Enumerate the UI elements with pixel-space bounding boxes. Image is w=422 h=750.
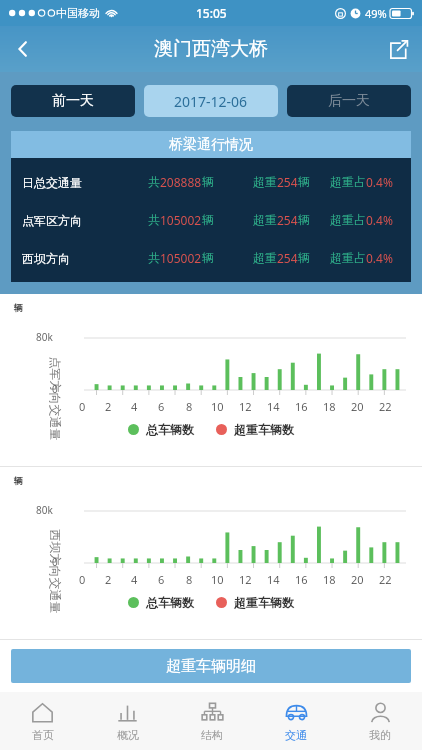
staticText: 16 [295,572,308,587]
staticText: 首页 [32,728,54,742]
staticText: 14 [267,399,280,414]
staticText: 辆 [202,174,214,189]
staticText: 0 [52,382,58,396]
staticText: 辆 [202,250,214,265]
staticText: 22 [379,399,392,414]
staticText: 20 [351,572,364,587]
staticText: 辆 [298,174,310,189]
button[interactable]: 结构 [170,692,254,750]
staticText: 80k [36,503,53,517]
staticText: 超重车辆明细 [166,657,256,676]
staticText: 超重占 [330,174,366,189]
staticText: 超重 [253,174,277,189]
staticText: 18 [323,572,336,587]
staticText: 4 [131,399,138,414]
staticText: 10 [211,572,224,587]
staticText: 80k [36,330,53,344]
staticText: 总车辆数 [146,595,194,610]
staticText: 254 [277,212,298,228]
staticText: 超重占 [330,250,366,265]
staticText: 8 [186,572,193,587]
staticText: 超重车辆数 [234,595,294,610]
staticText: 0 [52,555,58,569]
button[interactable]: Back [0,26,46,72]
staticText: 0.4% [366,212,393,228]
button[interactable]: 交通 [254,692,338,750]
staticText: 0.4% [366,250,393,266]
staticText: 105002 [160,212,202,228]
staticText: 中国移动 [56,6,100,20]
staticText: 交通 [285,728,307,742]
staticText: 0 [79,572,86,587]
button[interactable]: 2017-12-06 [144,85,278,117]
staticText: 8 [186,399,193,414]
button[interactable]: 后一天 [287,85,411,117]
staticText: 6 [158,572,165,587]
staticText: 概况 [117,728,139,742]
staticText: 点军区方向 [22,213,82,228]
staticText: 西坝方向交通量 [47,529,62,613]
button[interactable]: 我的 [338,692,422,750]
button[interactable]: Share [374,26,422,72]
staticText: 2 [105,572,112,587]
button[interactable]: 首页 [0,692,85,750]
staticText: 254 [277,250,298,266]
staticText: 16 [295,399,308,414]
staticText: 254 [277,174,298,190]
staticText: 2017-12-06 [174,92,248,111]
staticText: 西坝方向 [22,251,70,266]
staticText: 14 [267,572,280,587]
staticText: 总车辆数 [146,422,194,437]
staticText: 12 [239,572,252,587]
staticText: 辆 [14,302,23,313]
button[interactable]: 超重车辆明细 [11,649,411,683]
staticText: 结构 [201,728,223,742]
staticText: 日总交通量 [22,175,82,190]
staticText: 0.4% [366,174,393,190]
staticText: 208888 [160,174,202,190]
staticText: 桥梁通行情况 [169,136,253,154]
staticText: 0 [79,399,86,414]
staticText: 超重 [253,250,277,265]
staticText: 我的 [369,728,391,742]
staticText: 2 [105,399,112,414]
staticText: 6 [158,399,165,414]
staticText: 18 [323,399,336,414]
staticText: 49% [365,6,387,21]
staticText: 前一天 [52,92,94,110]
staticText: 105002 [160,250,202,266]
staticText: 辆 [14,475,23,486]
staticText: 20 [351,399,364,414]
staticText: 4 [131,572,138,587]
staticText: 点军方向交通量 [47,356,62,440]
staticText: 15:05 [196,5,227,21]
staticText: 22 [379,572,392,587]
staticText: 超重 [253,212,277,227]
staticText: 共 [148,250,160,265]
button[interactable]: 概况 [85,692,170,750]
staticText: 12 [239,399,252,414]
staticText: 超重车辆数 [234,422,294,437]
staticText: 共 [148,174,160,189]
staticText: 辆 [298,250,310,265]
staticText: 共 [148,212,160,227]
button[interactable]: 前一天 [11,85,135,117]
staticText: 10 [211,399,224,414]
staticText: 超重占 [330,212,366,227]
staticText: 辆 [298,212,310,227]
staticText: 辆 [202,212,214,227]
staticText: 澳门西湾大桥 [154,37,268,61]
staticText: 后一天 [328,92,370,110]
